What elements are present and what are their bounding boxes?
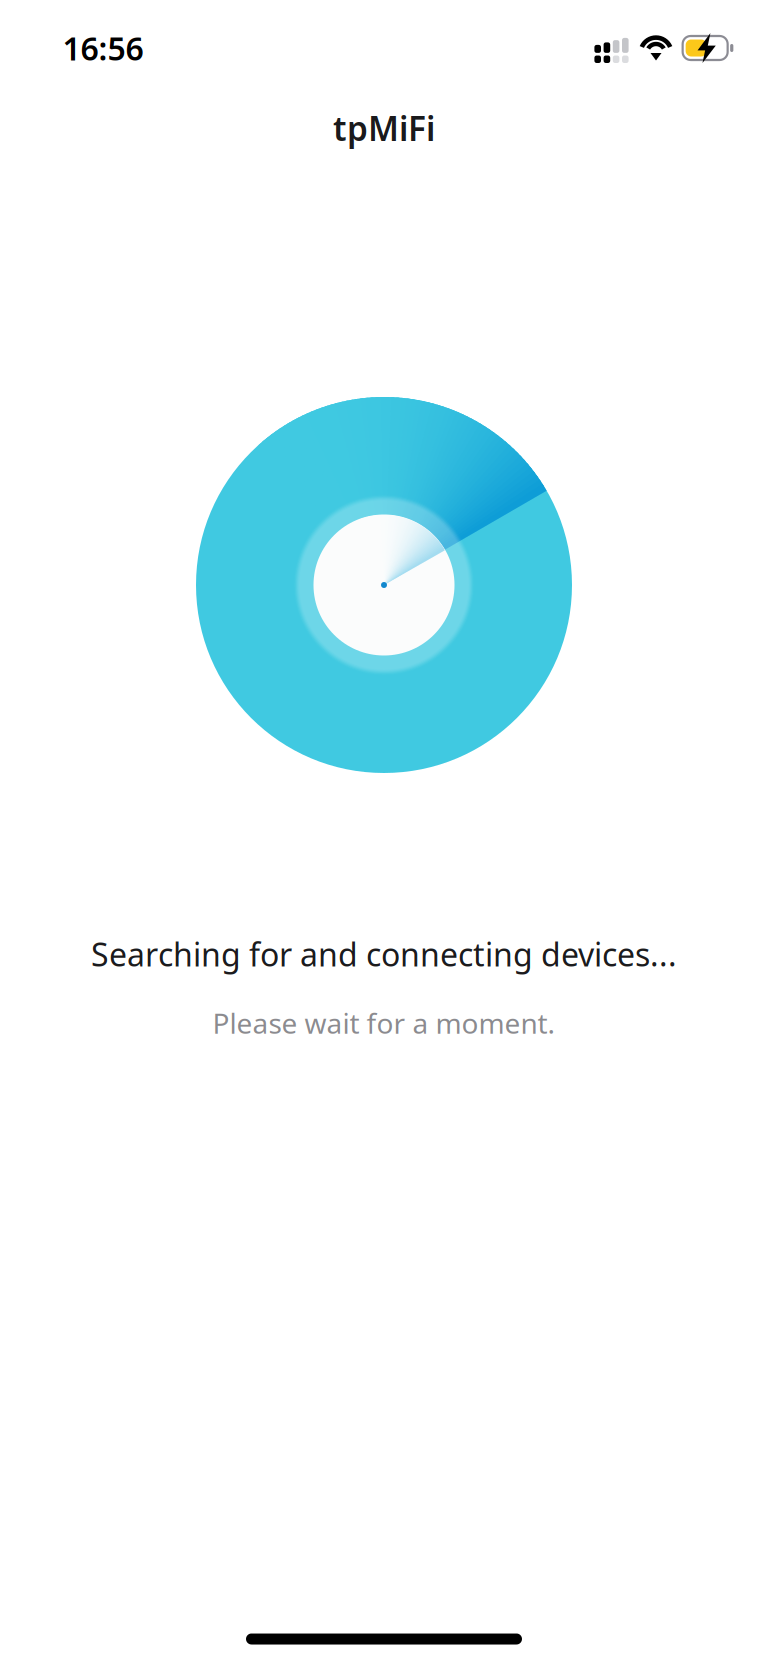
staticText: 16:56 (62, 27, 143, 69)
staticText: Searching for and connecting devices... (91, 933, 677, 975)
staticText: Please wait for a moment. (212, 1004, 555, 1042)
button[interactable]: Searching for devices (196, 397, 572, 773)
staticText: tpMiFi (333, 106, 435, 150)
